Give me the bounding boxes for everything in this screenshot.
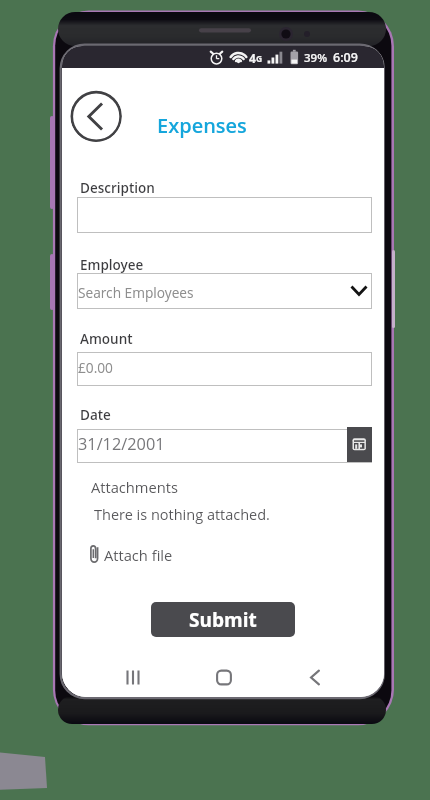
staticText: 6:09 [333,49,358,66]
staticText: Attach file [104,545,173,565]
button[interactable]: 31/12/2001 [77,429,372,463]
button[interactable]: Back [291,654,339,697]
staticText: Submit [189,607,257,633]
button[interactable]: Attach file [90,544,173,566]
button[interactable]: Back [70,90,122,142]
staticText: £0.00 [78,358,113,377]
staticText: G [256,53,263,65]
button[interactable]: Home [200,654,248,697]
button[interactable]: £0.00 [77,352,372,386]
button[interactable]: Recent apps [109,654,157,697]
button[interactable]: Search Employees [77,273,372,309]
staticText: Expenses [157,112,247,139]
staticText: Description [80,179,155,197]
staticText: 39% [304,50,328,66]
button[interactable]: Submit [151,602,295,637]
staticText: Attachments [91,477,178,497]
staticText: 31/12/2001 [78,433,165,455]
staticText: Employee [80,256,144,274]
staticText: Amount [80,330,133,348]
button[interactable] [77,197,372,233]
staticText: Date [80,406,111,424]
staticText: There is nothing attached. [94,505,270,525]
button[interactable]: Pick date [347,427,372,462]
staticText: 4 [249,50,256,66]
staticText: Search Employees [78,283,194,302]
